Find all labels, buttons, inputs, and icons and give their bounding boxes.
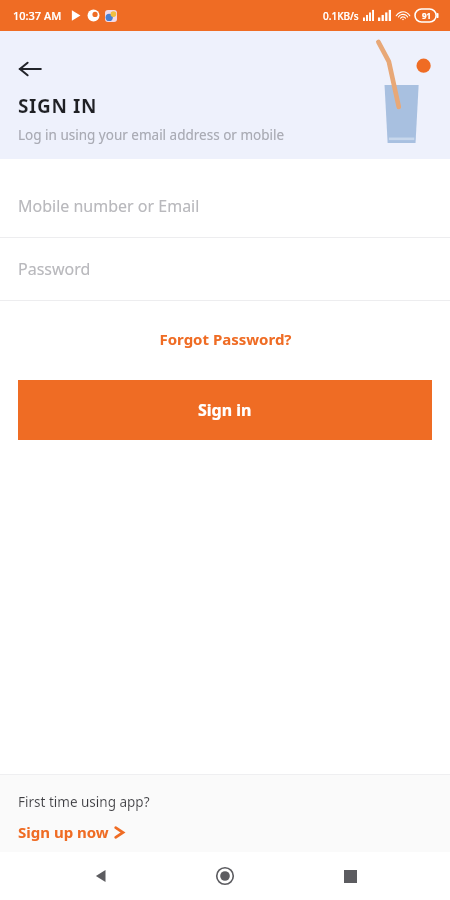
button[interactable]: Home [201, 852, 249, 900]
button[interactable]: Back [8, 47, 52, 91]
staticText: SIGN IN [18, 93, 98, 119]
staticText: Password [18, 258, 91, 280]
button[interactable]: Recent apps [326, 852, 374, 900]
staticText: Forgot Password? [159, 329, 292, 349]
button[interactable]: Password [0, 238, 450, 301]
button[interactable]: Forgot Password? [0, 323, 450, 355]
button[interactable]: Sign up now [18, 822, 125, 842]
button[interactable]: Sign in [18, 380, 432, 440]
staticText: 0.1KB/s [323, 9, 359, 23]
button[interactable]: Back [77, 852, 125, 900]
button[interactable]: Mobile number or Email [0, 175, 450, 238]
staticText: Sign in [198, 399, 252, 421]
staticText: Log in using your email address or mobil… [18, 126, 285, 144]
staticText: First time using app? [18, 793, 150, 811]
staticText: Mobile number or Email [18, 195, 200, 217]
staticText: 91 [422, 10, 432, 21]
staticText: Sign up now [18, 822, 109, 842]
staticText: 10:37 AM [13, 8, 62, 23]
